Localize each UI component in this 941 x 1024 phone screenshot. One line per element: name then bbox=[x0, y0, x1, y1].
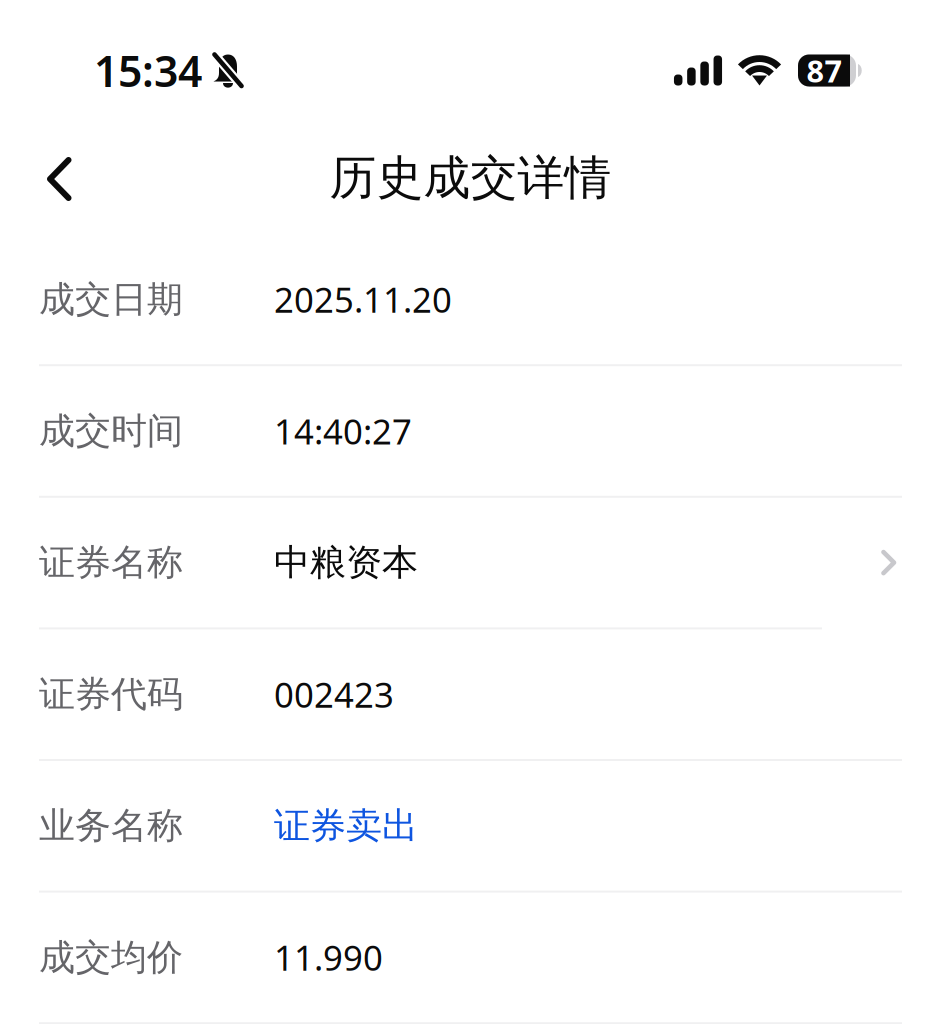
staticText: 成交均价 bbox=[39, 935, 183, 979]
staticText: 证券名称 bbox=[39, 540, 183, 585]
staticText: 成交日期 bbox=[39, 277, 183, 321]
staticText: 成交时间 bbox=[39, 409, 183, 453]
staticText: 14:40:27 bbox=[274, 408, 412, 454]
staticText: 87 bbox=[806, 50, 842, 91]
button[interactable]: 证券名称 bbox=[0, 498, 941, 627]
staticText: 证券卖出 bbox=[274, 804, 418, 848]
button[interactable]: 成交时间 bbox=[0, 366, 941, 496]
button[interactable]: Back bbox=[0, 110, 72, 235]
button[interactable]: 成交日期 bbox=[0, 235, 941, 364]
staticText: 证券代码 bbox=[39, 672, 183, 716]
staticText: 002423 bbox=[274, 671, 394, 717]
button[interactable]: 业务名称 bbox=[0, 761, 941, 891]
staticText: 11.990 bbox=[274, 934, 383, 980]
button[interactable]: 成交均价 bbox=[0, 893, 941, 1022]
staticText: 历史成交详情 bbox=[329, 149, 611, 207]
button[interactable]: 证券代码 bbox=[0, 629, 941, 759]
staticText: 15:34 bbox=[94, 42, 202, 99]
staticText: 业务名称 bbox=[39, 804, 183, 848]
staticText: 2025.11.20 bbox=[274, 276, 452, 322]
staticText: 中粮资本 bbox=[274, 540, 418, 585]
